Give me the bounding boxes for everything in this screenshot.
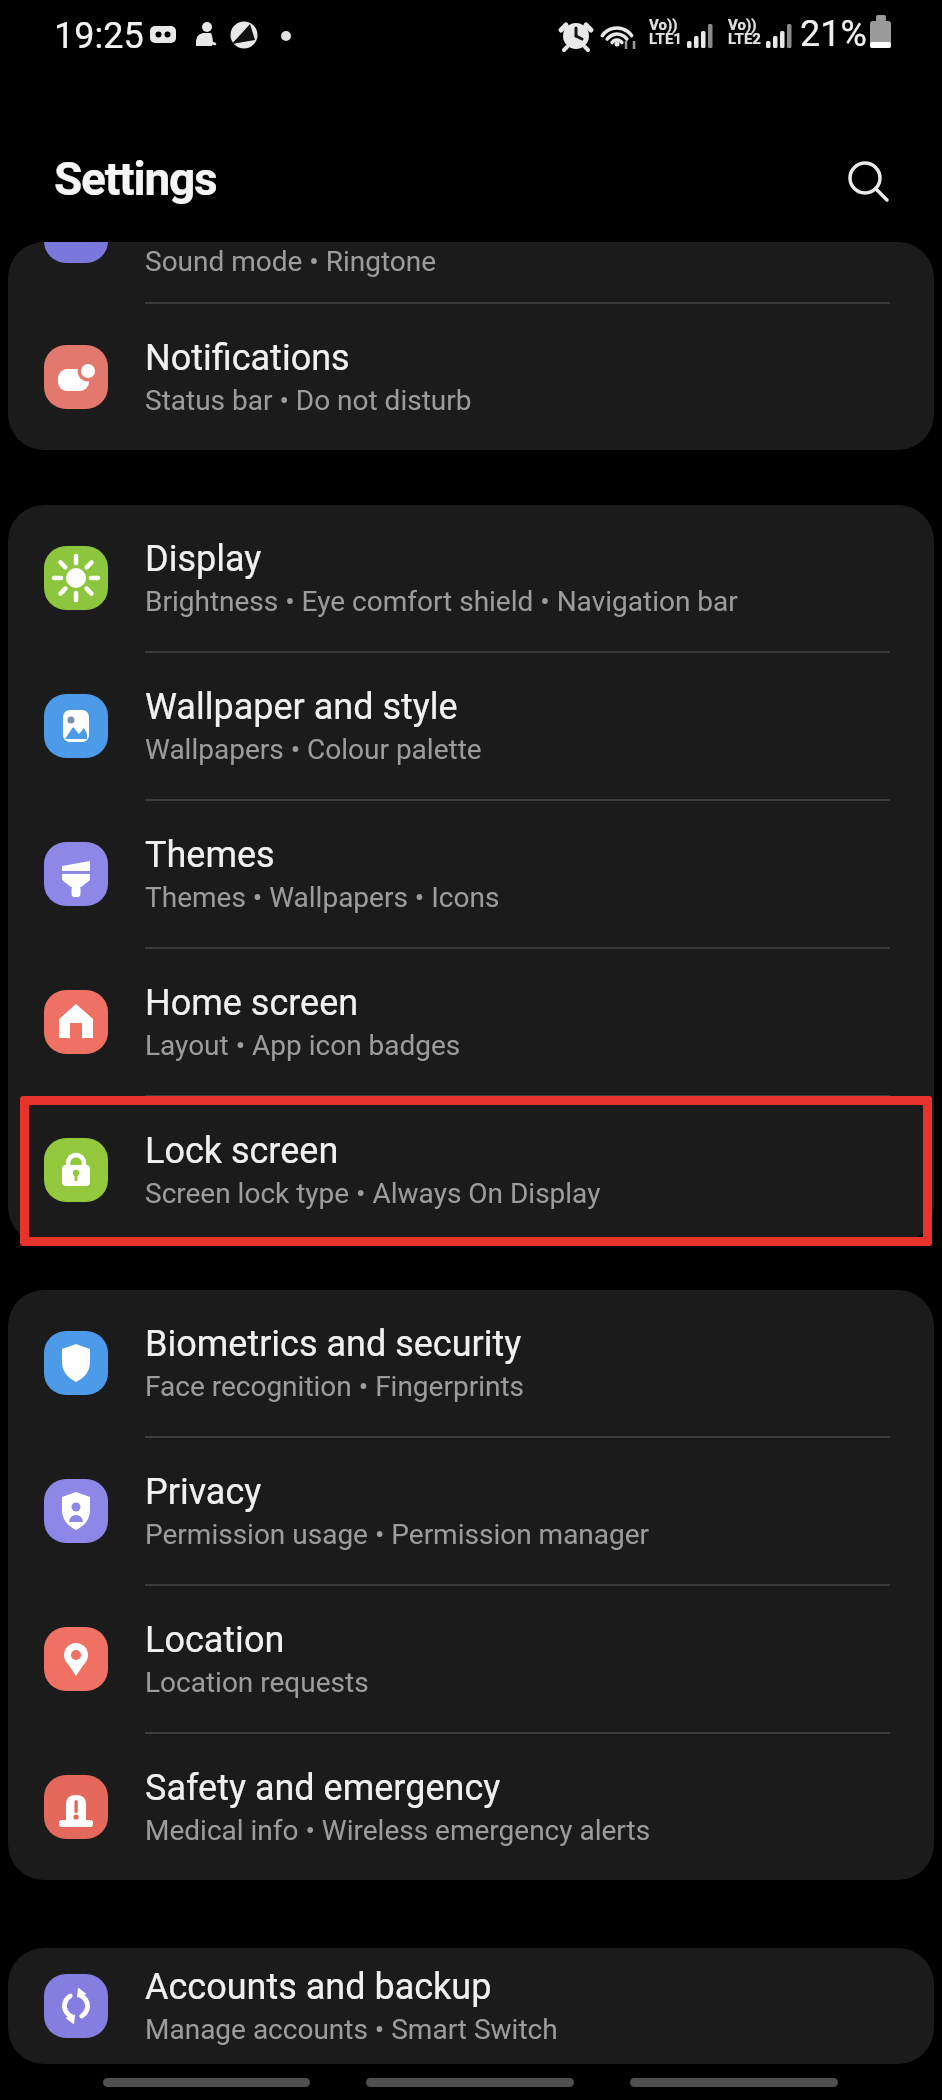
staticText: Layout • App icon badges xyxy=(145,1029,461,1062)
staticText: LTE2 xyxy=(728,30,761,48)
staticText: Manage accounts • Smart Switch xyxy=(145,2013,558,2046)
staticText: Accounts and backup xyxy=(145,1966,492,2008)
staticText: Safety and emergency xyxy=(145,1767,501,1809)
staticText: Face recognition • Fingerprints xyxy=(145,1370,525,1403)
staticText: Wallpapers • Colour palette xyxy=(145,733,482,766)
staticText: Location xyxy=(145,1619,285,1661)
staticText: Sound mode • Ringtone xyxy=(145,245,437,278)
staticText: 19:25 xyxy=(54,15,144,57)
staticText: LTE1 xyxy=(649,30,682,48)
staticText: Permission usage • Permission manager xyxy=(145,1518,650,1551)
staticText: Medical info • Wireless emergency alerts xyxy=(145,1814,651,1847)
staticText: Notifications xyxy=(145,337,350,379)
staticText: Status bar • Do not disturb xyxy=(145,384,472,417)
staticText: Lock screen xyxy=(145,1130,339,1172)
staticText: Biometrics and security xyxy=(145,1323,522,1365)
staticText: 21% xyxy=(800,13,867,55)
staticText: Wallpaper and style xyxy=(145,686,458,728)
staticText: Home screen xyxy=(145,982,359,1024)
staticText: Vo)) xyxy=(649,16,678,34)
staticText: Display xyxy=(145,538,262,580)
staticText: Settings xyxy=(54,152,217,206)
staticText: Themes xyxy=(145,834,275,876)
staticText: Brightness • Eye comfort shield • Naviga… xyxy=(145,585,738,618)
staticText: Screen lock type • Always On Display xyxy=(145,1177,601,1210)
staticText: Privacy xyxy=(145,1471,262,1513)
staticText: Vo)) xyxy=(728,16,757,34)
staticText: Themes • Wallpapers • Icons xyxy=(145,881,500,914)
staticText: Location requests xyxy=(145,1666,369,1699)
